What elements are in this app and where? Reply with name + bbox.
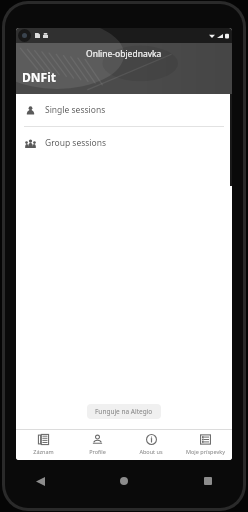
button[interactable]: Recent apps xyxy=(197,470,219,492)
staticText: Záznam xyxy=(33,448,54,455)
staticText: Funguje na Altegio xyxy=(95,407,153,416)
button[interactable]: Single sessions xyxy=(16,94,232,126)
staticText: Profile xyxy=(89,448,106,455)
staticText: About us xyxy=(139,448,163,455)
button[interactable]: Profile xyxy=(70,430,124,460)
staticText: Online-objednavka xyxy=(86,48,162,60)
button[interactable]: Group sessions xyxy=(16,127,232,159)
button[interactable]: Moje príspevky xyxy=(178,430,232,460)
staticText: Single sessions xyxy=(45,104,106,116)
button[interactable]: About us xyxy=(124,430,178,460)
button[interactable]: Back xyxy=(29,470,51,492)
button[interactable]: Home xyxy=(113,470,135,492)
button[interactable]: Funguje na Altegio xyxy=(87,404,161,419)
staticText: Group sessions xyxy=(45,137,107,149)
button[interactable]: Záznam xyxy=(16,430,70,460)
staticText: DNFit xyxy=(22,69,56,85)
staticText: Moje príspevky xyxy=(186,448,225,455)
